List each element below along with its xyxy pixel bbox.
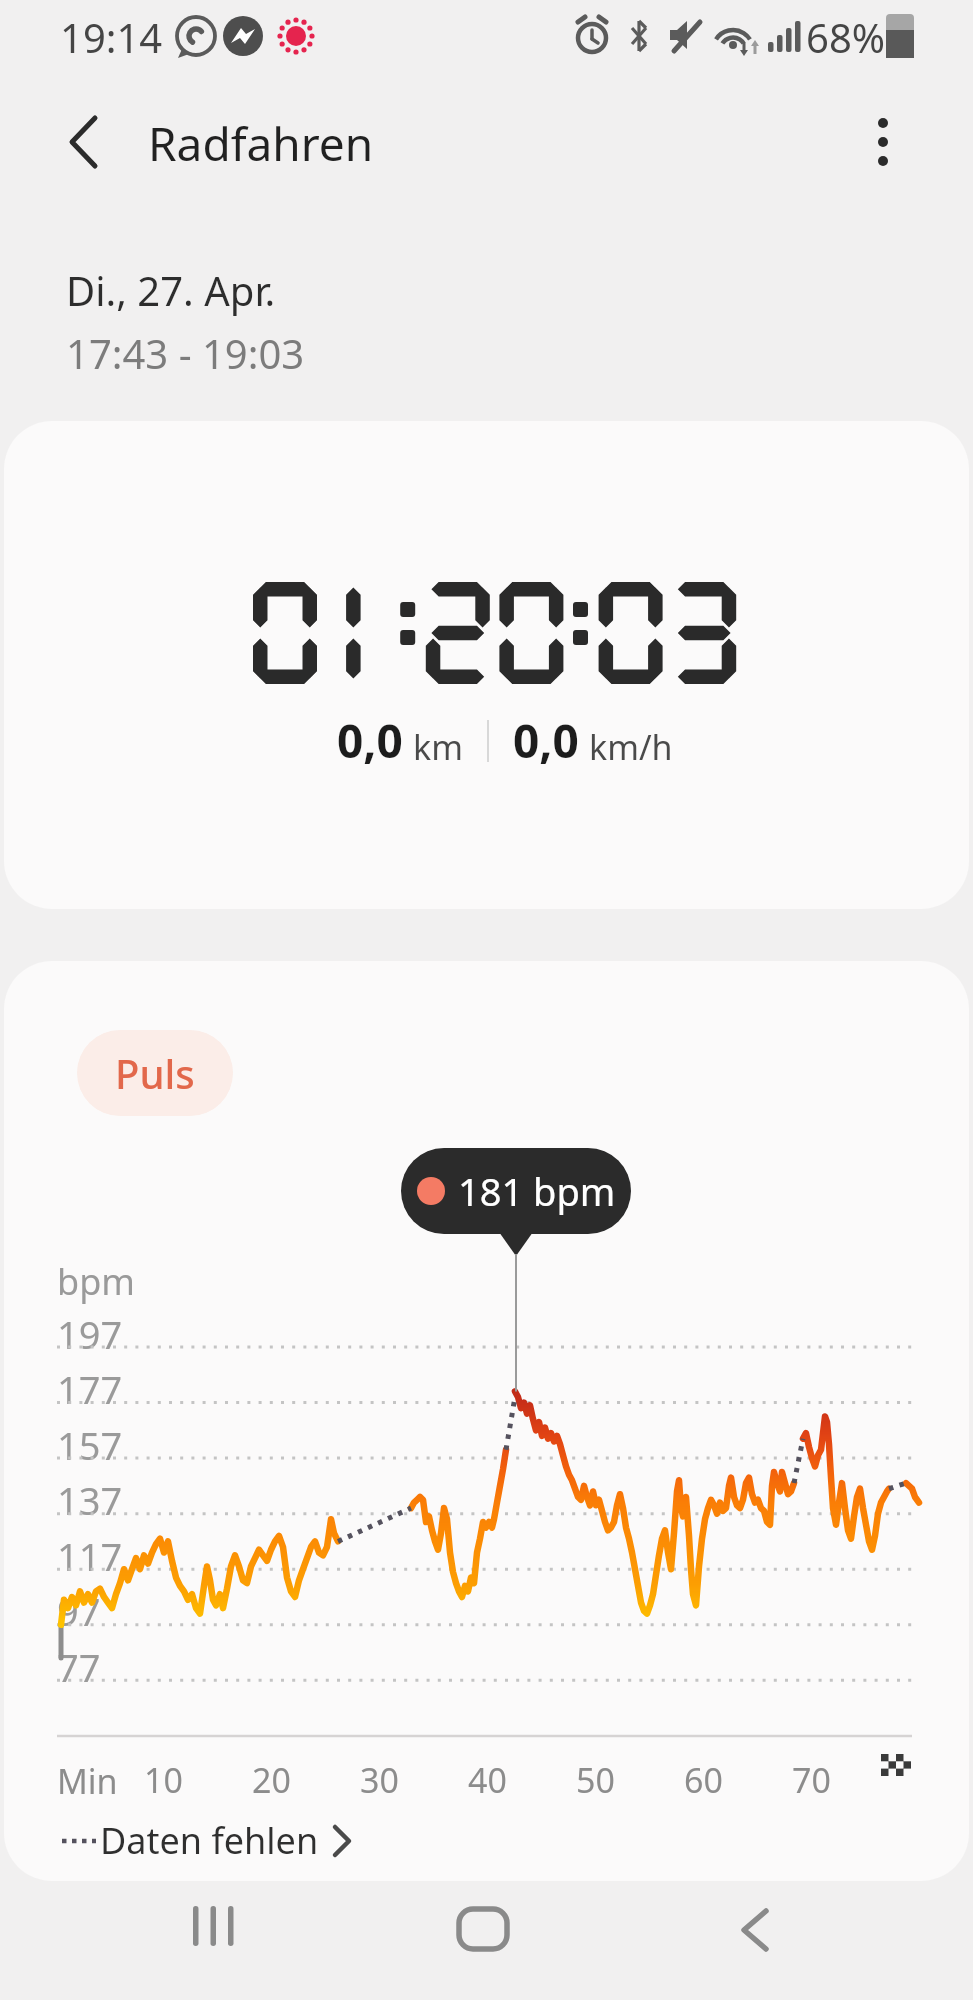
staticText: 137 bbox=[57, 1474, 123, 1526]
staticText: 68% bbox=[806, 10, 885, 64]
staticText: 0,0 bbox=[337, 709, 403, 772]
staticText: 20 bbox=[252, 1757, 291, 1803]
button[interactable]: Daten fehlen bbox=[44, 1816, 363, 1865]
button[interactable] bbox=[851, 104, 917, 180]
staticText: 177 bbox=[57, 1363, 123, 1415]
staticText: 197 bbox=[57, 1308, 123, 1360]
staticText: 50 bbox=[576, 1757, 615, 1803]
staticText: 157 bbox=[57, 1419, 123, 1471]
staticText: Radfahren bbox=[148, 112, 374, 175]
staticText: 40 bbox=[468, 1757, 507, 1803]
staticText: 30 bbox=[360, 1757, 399, 1803]
staticText: 77 bbox=[57, 1641, 101, 1693]
staticText: 10 bbox=[144, 1757, 183, 1803]
staticText: Daten fehlen bbox=[100, 1816, 319, 1865]
staticText: 0,0 bbox=[513, 709, 579, 772]
staticText: 70 bbox=[792, 1757, 831, 1803]
staticText: 181 bpm bbox=[458, 1165, 616, 1217]
button[interactable] bbox=[44, 104, 120, 180]
staticText: km/h bbox=[589, 724, 673, 770]
staticText: Di., 27. Apr. bbox=[66, 263, 276, 317]
staticText: 19:14 bbox=[60, 10, 163, 64]
staticText: 97 bbox=[57, 1585, 101, 1637]
staticText: 17:43 - 19:03 bbox=[66, 326, 305, 380]
staticText: 117 bbox=[57, 1530, 123, 1582]
staticText: Min bbox=[57, 1758, 118, 1804]
button[interactable] bbox=[160, 1890, 260, 1970]
staticText: 60 bbox=[684, 1757, 723, 1803]
staticText: bpm bbox=[57, 1257, 135, 1306]
staticText: Puls bbox=[115, 1046, 195, 1100]
button[interactable] bbox=[705, 1890, 805, 1970]
staticText: km bbox=[413, 724, 463, 770]
button[interactable]: Puls bbox=[77, 1030, 233, 1116]
button[interactable] bbox=[433, 1890, 533, 1970]
